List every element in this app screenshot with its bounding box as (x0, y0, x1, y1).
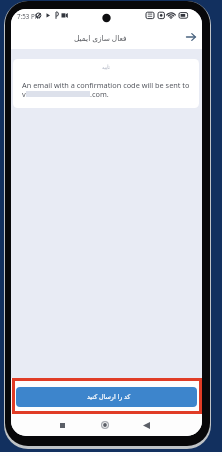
button[interactable]: Recents (53, 416, 71, 434)
staticText: .com. (90, 89, 109, 99)
button[interactable]: Home (96, 416, 114, 434)
staticText: v (22, 89, 26, 99)
button[interactable]: Back (137, 416, 155, 434)
staticText: 7:53 PM (17, 12, 41, 20)
staticText: تأیید (13, 65, 199, 70)
staticText: An email with a confirmation code will b… (22, 80, 190, 90)
button[interactable]: Next (183, 29, 199, 45)
button[interactable]: کد را ارسال کنید (16, 387, 197, 407)
staticText: فعال سازی ایمیل (74, 33, 127, 43)
staticText: کد را ارسال کنید (87, 392, 131, 401)
